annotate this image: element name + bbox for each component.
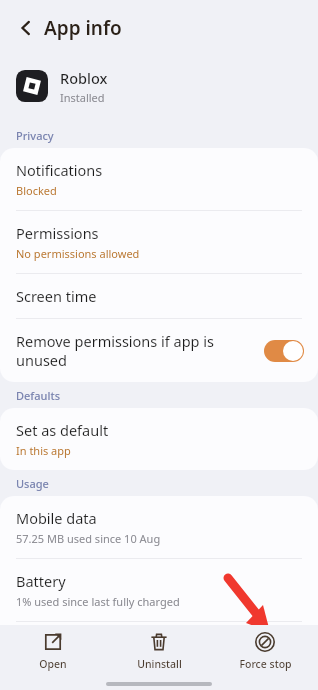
button[interactable]: Mobile data	[0, 496, 318, 558]
button[interactable]: Back	[8, 10, 44, 46]
staticText: App info	[44, 15, 122, 41]
button[interactable]: Remove permissions toggle	[264, 340, 304, 362]
button[interactable]: Notifications	[0, 148, 318, 210]
button[interactable]: Force stop	[212, 625, 318, 677]
staticText: Blocked	[16, 183, 57, 198]
button[interactable]: Roblox	[0, 56, 318, 116]
staticText: Open	[39, 657, 67, 671]
button[interactable]: Set as default	[0, 408, 318, 470]
staticText: Roblox	[60, 68, 108, 88]
staticText: Force stop	[239, 657, 292, 671]
button[interactable]: Open	[0, 625, 106, 677]
staticText: Screen time	[16, 286, 97, 306]
staticText: Remove permissions if app is unused	[16, 331, 254, 370]
button[interactable]: Battery	[0, 559, 318, 621]
staticText: Set as default	[16, 420, 109, 440]
other: Open	[43, 632, 63, 652]
staticText: No permissions allowed	[16, 246, 140, 261]
staticText: Defaults	[16, 388, 60, 403]
staticText: Storage	[16, 634, 69, 654]
button[interactable]: Uninstall	[106, 625, 212, 677]
staticText: Installed	[60, 90, 105, 105]
staticText: In this app	[16, 443, 71, 458]
staticText: Privacy	[16, 128, 54, 143]
button[interactable]: Storage	[0, 622, 318, 666]
staticText: 1% used since last fully charged	[16, 594, 180, 609]
staticText: Usage	[16, 476, 49, 491]
staticText: Uninstall	[137, 657, 182, 671]
other: Uninstall	[149, 632, 169, 652]
staticText: 57.25 MB used since 10 Aug	[16, 531, 161, 546]
other: Force stop	[255, 632, 275, 652]
staticText: Mobile data	[16, 508, 97, 528]
staticText: Battery	[16, 571, 66, 591]
button[interactable]: Remove permissions if app is unused	[0, 319, 318, 382]
staticText: Permissions	[16, 223, 99, 243]
button[interactable]: Permissions	[0, 211, 318, 273]
staticText: Notifications	[16, 160, 103, 180]
button[interactable]: Screen time	[0, 274, 318, 318]
